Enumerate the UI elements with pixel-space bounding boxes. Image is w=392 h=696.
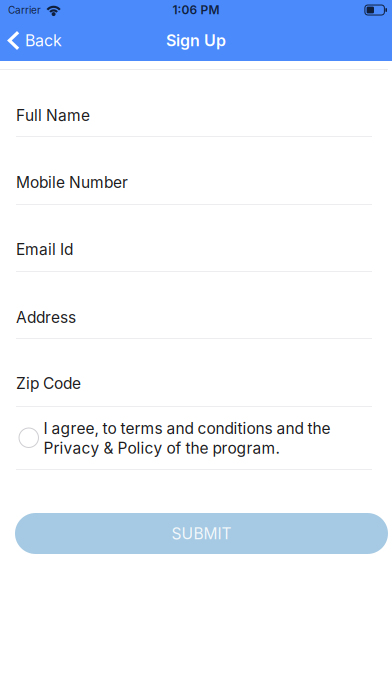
staticText: Carrier [8,4,41,16]
button[interactable]: Mobile Number [0,137,392,205]
staticText: 1:06 PM [172,3,219,17]
staticText: SUBMIT [171,524,231,543]
button[interactable]: Address [0,272,392,339]
staticText: Email Id [16,240,73,259]
button[interactable]: I agree, to terms and conditions and the [0,407,392,470]
button[interactable]: Full Name [0,70,392,137]
staticText: Mobile Number [16,173,128,192]
staticText: Privacy & Policy of the program. [43,439,279,458]
button[interactable]: Zip Code [0,339,392,407]
staticText: I agree, to terms and conditions and the [43,419,330,438]
staticText: Address [16,308,76,327]
button[interactable]: SUBMIT [15,513,388,554]
staticText: Back [25,31,62,50]
staticText: Sign Up [166,31,226,50]
button[interactable]: Back [0,24,72,56]
button[interactable]: Email Id [0,205,392,272]
staticText: Zip Code [16,374,81,393]
staticText: Full Name [16,106,90,125]
